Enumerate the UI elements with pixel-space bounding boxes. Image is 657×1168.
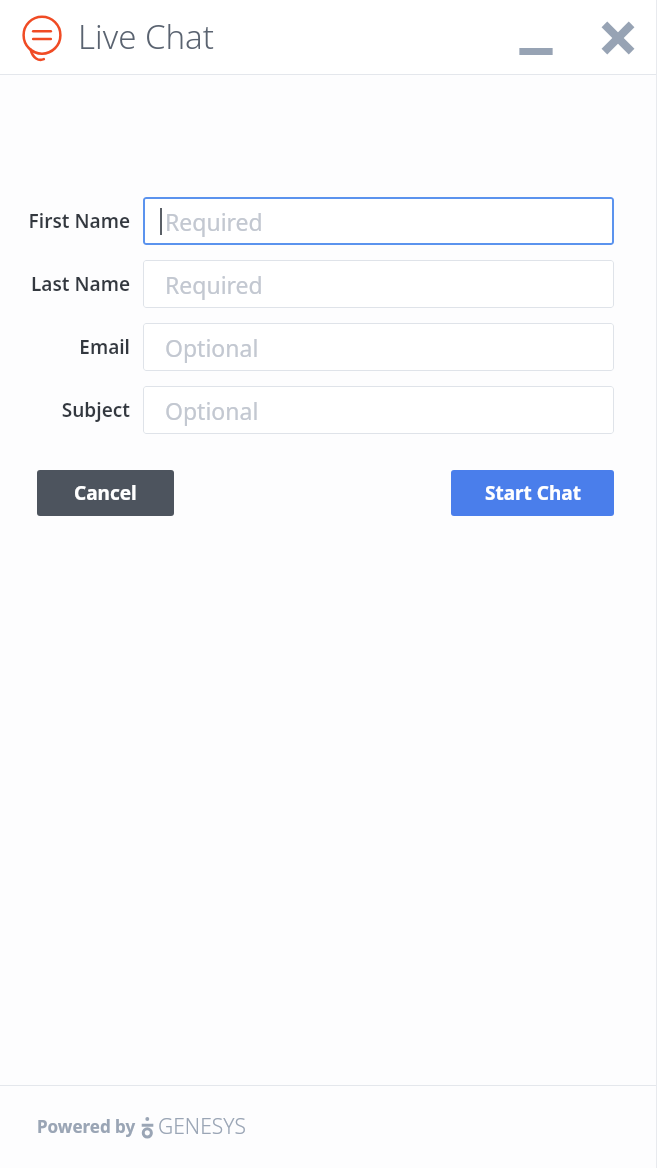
staticText: Cancel	[74, 480, 137, 506]
staticText: Subject	[10, 397, 130, 423]
staticText: Required	[165, 269, 263, 300]
staticText: Powered by	[37, 1115, 136, 1138]
button[interactable]: Cancel	[37, 470, 174, 516]
button[interactable]: Minimize	[510, 14, 562, 66]
staticText: Live Chat	[78, 14, 215, 59]
staticText: Optional	[165, 332, 259, 363]
staticText: Start Chat	[485, 480, 581, 506]
staticText: First Name	[10, 208, 130, 234]
button[interactable]: Start Chat	[451, 470, 614, 516]
button[interactable]: Optional	[143, 386, 614, 434]
staticText: Email	[10, 334, 130, 360]
staticText: Required	[165, 206, 263, 237]
staticText: Optional	[165, 395, 259, 426]
staticText: Last Name	[10, 271, 130, 297]
button[interactable]: Required	[143, 197, 614, 245]
button[interactable]: Required	[143, 260, 614, 308]
button[interactable]: Close	[592, 12, 644, 64]
button[interactable]: Optional	[143, 323, 614, 371]
staticText: GENESYS	[158, 1112, 246, 1141]
